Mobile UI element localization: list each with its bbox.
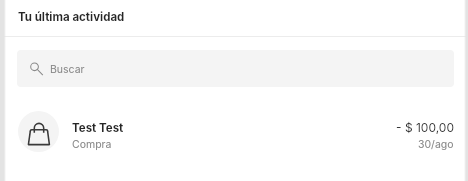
other: Buscar xyxy=(30,62,43,75)
staticText: Test Test xyxy=(72,121,124,135)
staticText: Buscar xyxy=(50,63,85,76)
staticText: - $ 100,00 xyxy=(396,120,454,135)
button[interactable]: Test Test xyxy=(0,102,468,164)
staticText: Compra xyxy=(72,138,112,151)
button[interactable]: Tu última actividad xyxy=(0,0,468,36)
staticText: Tu última actividad xyxy=(18,10,125,24)
staticText: 30/ago xyxy=(418,138,454,151)
button[interactable]: Buscar xyxy=(17,50,454,87)
